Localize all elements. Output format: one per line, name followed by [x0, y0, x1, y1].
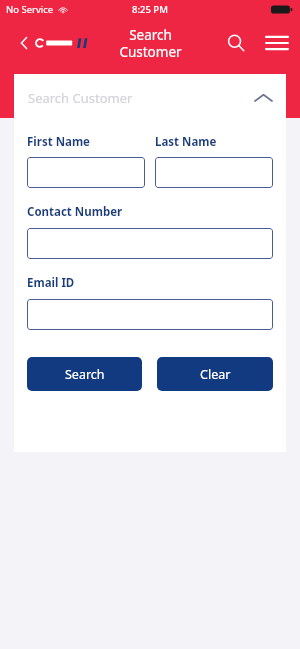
button[interactable]: Search	[220, 27, 252, 59]
staticText: Last Name	[155, 134, 217, 150]
button[interactable]: Search	[27, 357, 142, 391]
staticText: First Name	[27, 134, 90, 150]
button[interactable]	[27, 157, 145, 188]
button[interactable]: Clear	[157, 357, 273, 391]
button[interactable]	[27, 228, 273, 259]
button[interactable]: Search Customer	[14, 74, 286, 122]
staticText: Clear	[200, 366, 231, 383]
staticText: Contact Number	[27, 204, 123, 220]
staticText: Email ID	[27, 275, 75, 291]
button[interactable]	[27, 299, 273, 330]
button[interactable]	[155, 157, 273, 188]
staticText: No Service	[6, 3, 54, 16]
staticText: Search Customer	[119, 26, 182, 61]
button[interactable]: Back	[10, 29, 38, 57]
staticText: Search	[65, 366, 105, 383]
staticText: 8:25 PM	[132, 3, 168, 16]
button[interactable]: Menu	[260, 26, 294, 60]
staticText: Search Customer	[28, 89, 133, 107]
